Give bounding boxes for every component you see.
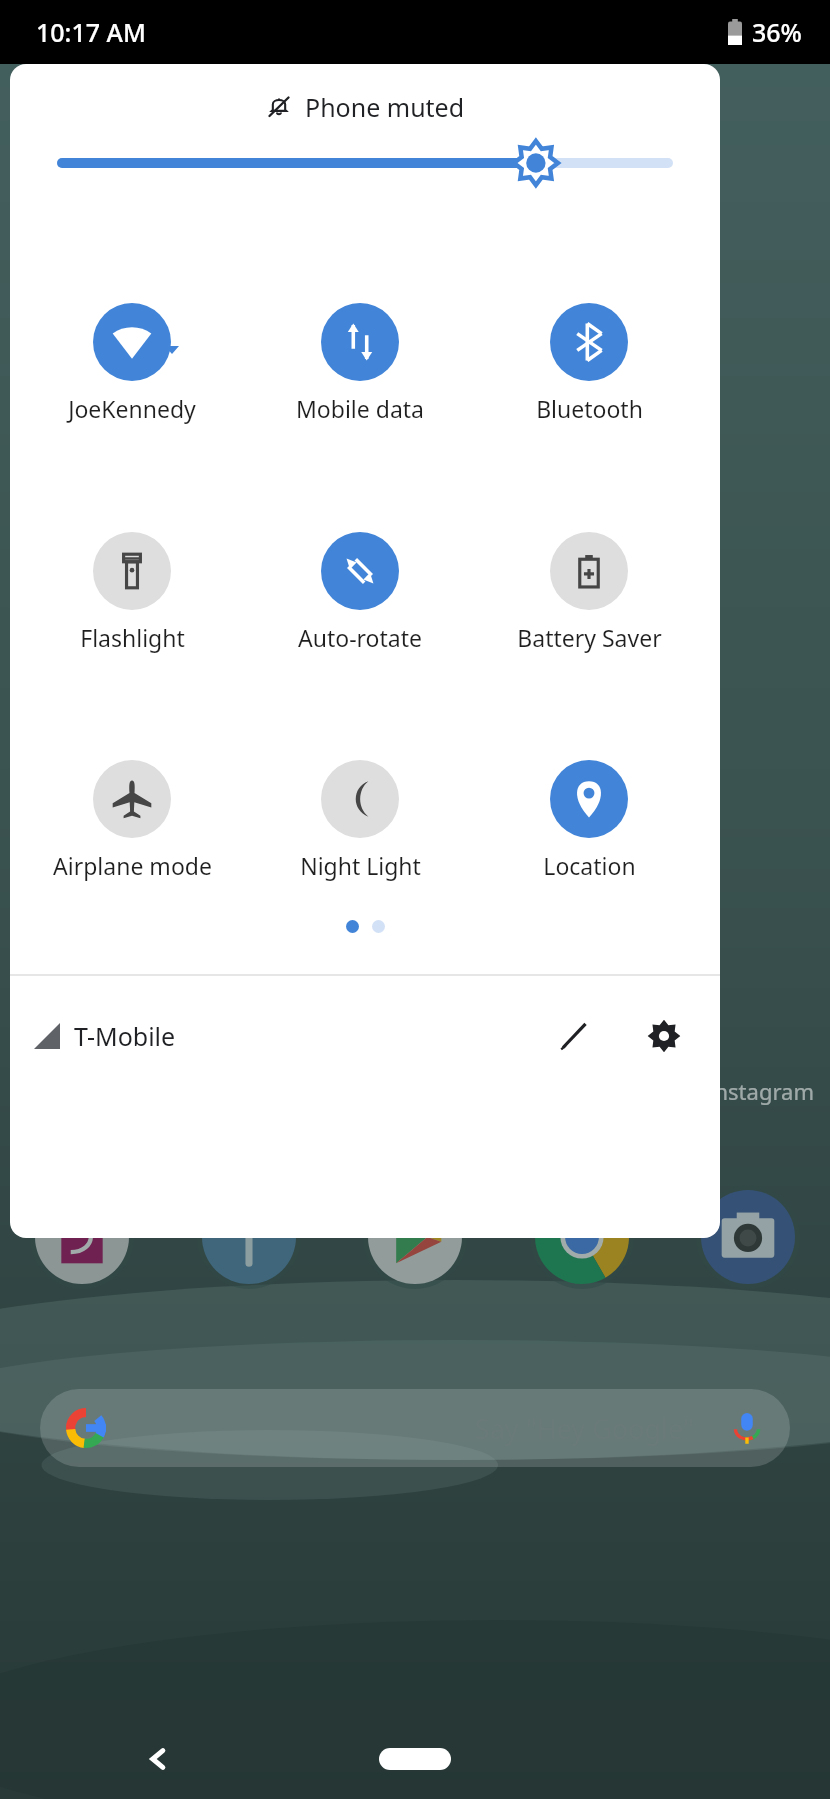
staticText: Instagram <box>707 1076 814 1106</box>
staticText: Night Light <box>300 850 421 881</box>
staticText: Airplane mode <box>53 850 212 881</box>
button[interactable]: Phone <box>30 1185 134 1289</box>
button[interactable]: Bluetooth <box>494 289 684 438</box>
button[interactable]: Night Light <box>265 746 455 895</box>
button[interactable]: Battery Saver <box>494 518 684 667</box>
staticText: Location <box>543 850 636 881</box>
button[interactable]: Edit tiles <box>542 1004 606 1068</box>
button[interactable]: Backup <box>197 1185 301 1289</box>
button[interactable]: Back <box>130 1731 186 1787</box>
button[interactable] <box>62 136 668 190</box>
staticText: Battery Saver <box>517 622 662 653</box>
button[interactable]: Airplane mode <box>37 746 227 895</box>
button[interactable]: Flashlight <box>37 518 227 667</box>
button[interactable]: Location <box>494 746 684 895</box>
button[interactable]: Home <box>379 1748 451 1770</box>
button[interactable]: Play Store <box>363 1185 467 1289</box>
staticText: Bluetooth <box>536 393 643 424</box>
button[interactable]: Phone muted <box>257 86 473 128</box>
staticText: Auto-rotate <box>298 622 422 653</box>
button[interactable]: Chrome <box>530 1185 634 1289</box>
button[interactable]: Mobile data <box>265 289 455 438</box>
button[interactable]: JoeKennedy <box>37 289 227 438</box>
staticText: 10:17 AM <box>36 15 146 49</box>
button[interactable]: Say "Hey Google" <box>40 1389 790 1467</box>
staticText: 36% <box>752 15 802 49</box>
staticText: Phone muted <box>305 90 465 124</box>
button[interactable]: Auto-rotate <box>265 518 455 667</box>
staticText: Flashlight <box>80 622 185 653</box>
button[interactable]: T-Mobile <box>26 1011 184 1061</box>
staticText: Mobile data <box>296 393 424 424</box>
button[interactable]: Settings <box>632 1004 696 1068</box>
staticText: Say "Hey Google" <box>106 1410 694 1447</box>
button[interactable]: Camera <box>696 1185 800 1289</box>
staticText: JoeKennedy <box>68 393 196 424</box>
staticText: T-Mobile <box>74 1019 176 1053</box>
